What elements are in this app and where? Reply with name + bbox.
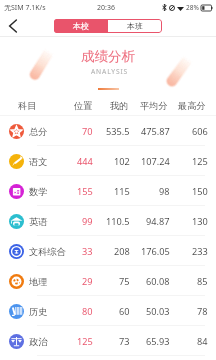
staticText: 110.5 — [106, 215, 130, 228]
staticText: 本班 — [127, 21, 143, 31]
staticText: 政治 — [29, 336, 48, 348]
staticText: 107.24 — [141, 155, 170, 168]
staticText: 平均分 — [140, 100, 168, 112]
staticText: 英语 — [29, 216, 48, 228]
staticText: 130 — [192, 215, 208, 228]
staticText: 475.87 — [141, 125, 170, 138]
staticText: 155 — [77, 185, 93, 198]
staticText: ANALYSIS — [91, 67, 129, 76]
button[interactable]: 本校 — [54, 19, 108, 33]
staticText: 84 — [197, 335, 208, 348]
staticText: 文科综合 — [29, 246, 66, 258]
staticText: 位置 — [74, 100, 93, 112]
staticText: 176.05 — [141, 245, 170, 258]
staticText: 99 — [82, 215, 93, 228]
staticText: 历史 — [29, 306, 48, 318]
button[interactable]: 总分 — [0, 116, 216, 146]
staticText: 成绩分析 — [81, 48, 135, 65]
staticText: 94.87 — [146, 215, 170, 228]
staticText: 80 — [82, 305, 93, 318]
staticText: 98 — [159, 185, 170, 198]
staticText: 65.93 — [146, 335, 170, 348]
staticText: 208 — [114, 245, 130, 258]
staticText: 最高分 — [178, 100, 206, 112]
staticText: 60 — [119, 305, 130, 318]
staticText: 科目 — [18, 100, 37, 112]
staticText: 数学 — [29, 186, 48, 198]
staticText: 33 — [82, 245, 93, 258]
button[interactable]: 地理 — [0, 266, 216, 296]
button[interactable]: 语文 — [0, 146, 216, 176]
staticText: 233 — [192, 245, 208, 258]
staticText: 102 — [114, 155, 130, 168]
staticText: 50.03 — [146, 305, 170, 318]
button[interactable]: 本班 — [108, 19, 162, 33]
staticText: 29 — [82, 275, 93, 288]
staticText: 我的 — [110, 100, 129, 112]
staticText: 本校 — [73, 21, 89, 31]
staticText: 20:36 — [97, 3, 115, 13]
staticText: 78 — [197, 305, 208, 318]
staticText: 语文 — [29, 156, 48, 168]
staticText: 150 — [192, 185, 208, 198]
staticText: 地理 — [29, 276, 48, 288]
staticText: 无SIM 7.1K/s — [4, 3, 46, 13]
staticText: 73 — [119, 335, 130, 348]
staticText: 444 — [77, 155, 93, 168]
staticText: 75 — [119, 275, 130, 288]
button[interactable]: 历史 — [0, 296, 216, 326]
staticText: 85 — [197, 275, 208, 288]
staticText: 60.08 — [146, 275, 170, 288]
button[interactable]: Back — [4, 17, 21, 34]
staticText: 115 — [114, 185, 130, 198]
staticText: 606 — [192, 125, 208, 138]
staticText: 125 — [192, 155, 208, 168]
staticText: 28% — [186, 3, 199, 12]
button[interactable]: 政治 — [0, 326, 216, 356]
staticText: 总分 — [29, 126, 48, 138]
staticText: 535.5 — [106, 125, 130, 138]
button[interactable]: 数学 — [0, 176, 216, 206]
button[interactable]: 文科综合 — [0, 236, 216, 266]
staticText: 125 — [77, 335, 93, 348]
staticText: 70 — [82, 125, 93, 138]
button[interactable]: 英语 — [0, 206, 216, 236]
